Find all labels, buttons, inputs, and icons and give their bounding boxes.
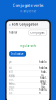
staticText: Indicative — [11, 52, 24, 56]
staticText: hablamos — [40, 76, 47, 83]
staticText: hablan — [39, 88, 47, 95]
staticText: hablo — [39, 60, 47, 64]
staticText: vosotros — [9, 82, 16, 89]
staticText: tú — [9, 66, 12, 70]
staticText: hablas — [39, 66, 47, 70]
staticText: in any tense — [19, 9, 36, 13]
staticText: él/ella — [9, 70, 14, 77]
staticText: regular verb — [19, 44, 36, 48]
staticText: Verb Conjugation — [12, 23, 39, 26]
staticText: hablar — [9, 31, 17, 34]
staticText: Conjugate — [30, 31, 45, 34]
staticText: habláis — [41, 82, 47, 89]
staticText: nosotros — [9, 74, 15, 85]
staticText: Conjugate verbs — [12, 2, 43, 8]
staticText: ellos — [9, 88, 14, 95]
staticText: habla — [41, 70, 47, 77]
staticText: yo — [9, 60, 12, 64]
staticText: < — [9, 22, 11, 27]
